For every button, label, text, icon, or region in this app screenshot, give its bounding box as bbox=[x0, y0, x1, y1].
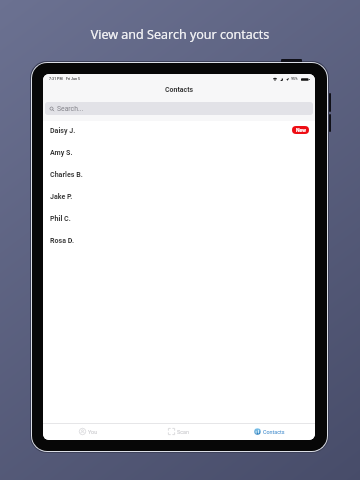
staticText: 95% bbox=[291, 77, 298, 81]
staticText: Search... bbox=[57, 105, 84, 113]
button[interactable]: Amy S. bbox=[43, 141, 315, 163]
button[interactable]: Rosa D. bbox=[43, 229, 315, 251]
button[interactable]: Search... bbox=[45, 102, 313, 115]
staticText: You bbox=[88, 429, 98, 435]
staticText: Rosa D. bbox=[50, 236, 75, 244]
button[interactable]: You bbox=[43, 423, 133, 440]
staticText: Fri Jun 5 bbox=[66, 77, 81, 81]
staticText: Contacts bbox=[263, 429, 285, 435]
staticText: View and Search your contacts bbox=[0, 26, 360, 43]
staticText: Contacts bbox=[165, 86, 194, 94]
staticText: Amy S. bbox=[50, 148, 73, 156]
staticText: Jake P. bbox=[50, 192, 73, 200]
staticText: Scan bbox=[177, 429, 189, 435]
button[interactable]: Daisy J. bbox=[43, 119, 315, 141]
button[interactable]: Charles B. bbox=[43, 163, 315, 185]
button[interactable]: Scan bbox=[133, 423, 224, 440]
button[interactable]: Phil C. bbox=[43, 207, 315, 229]
staticText: Phil C. bbox=[50, 214, 71, 222]
button[interactable]: Contacts bbox=[224, 423, 315, 440]
staticText: Daisy J. bbox=[50, 126, 76, 134]
staticText: New bbox=[296, 127, 306, 133]
staticText: Charles B. bbox=[50, 170, 83, 178]
button[interactable]: Jake P. bbox=[43, 185, 315, 207]
staticText: 7:31 PM bbox=[49, 77, 63, 81]
